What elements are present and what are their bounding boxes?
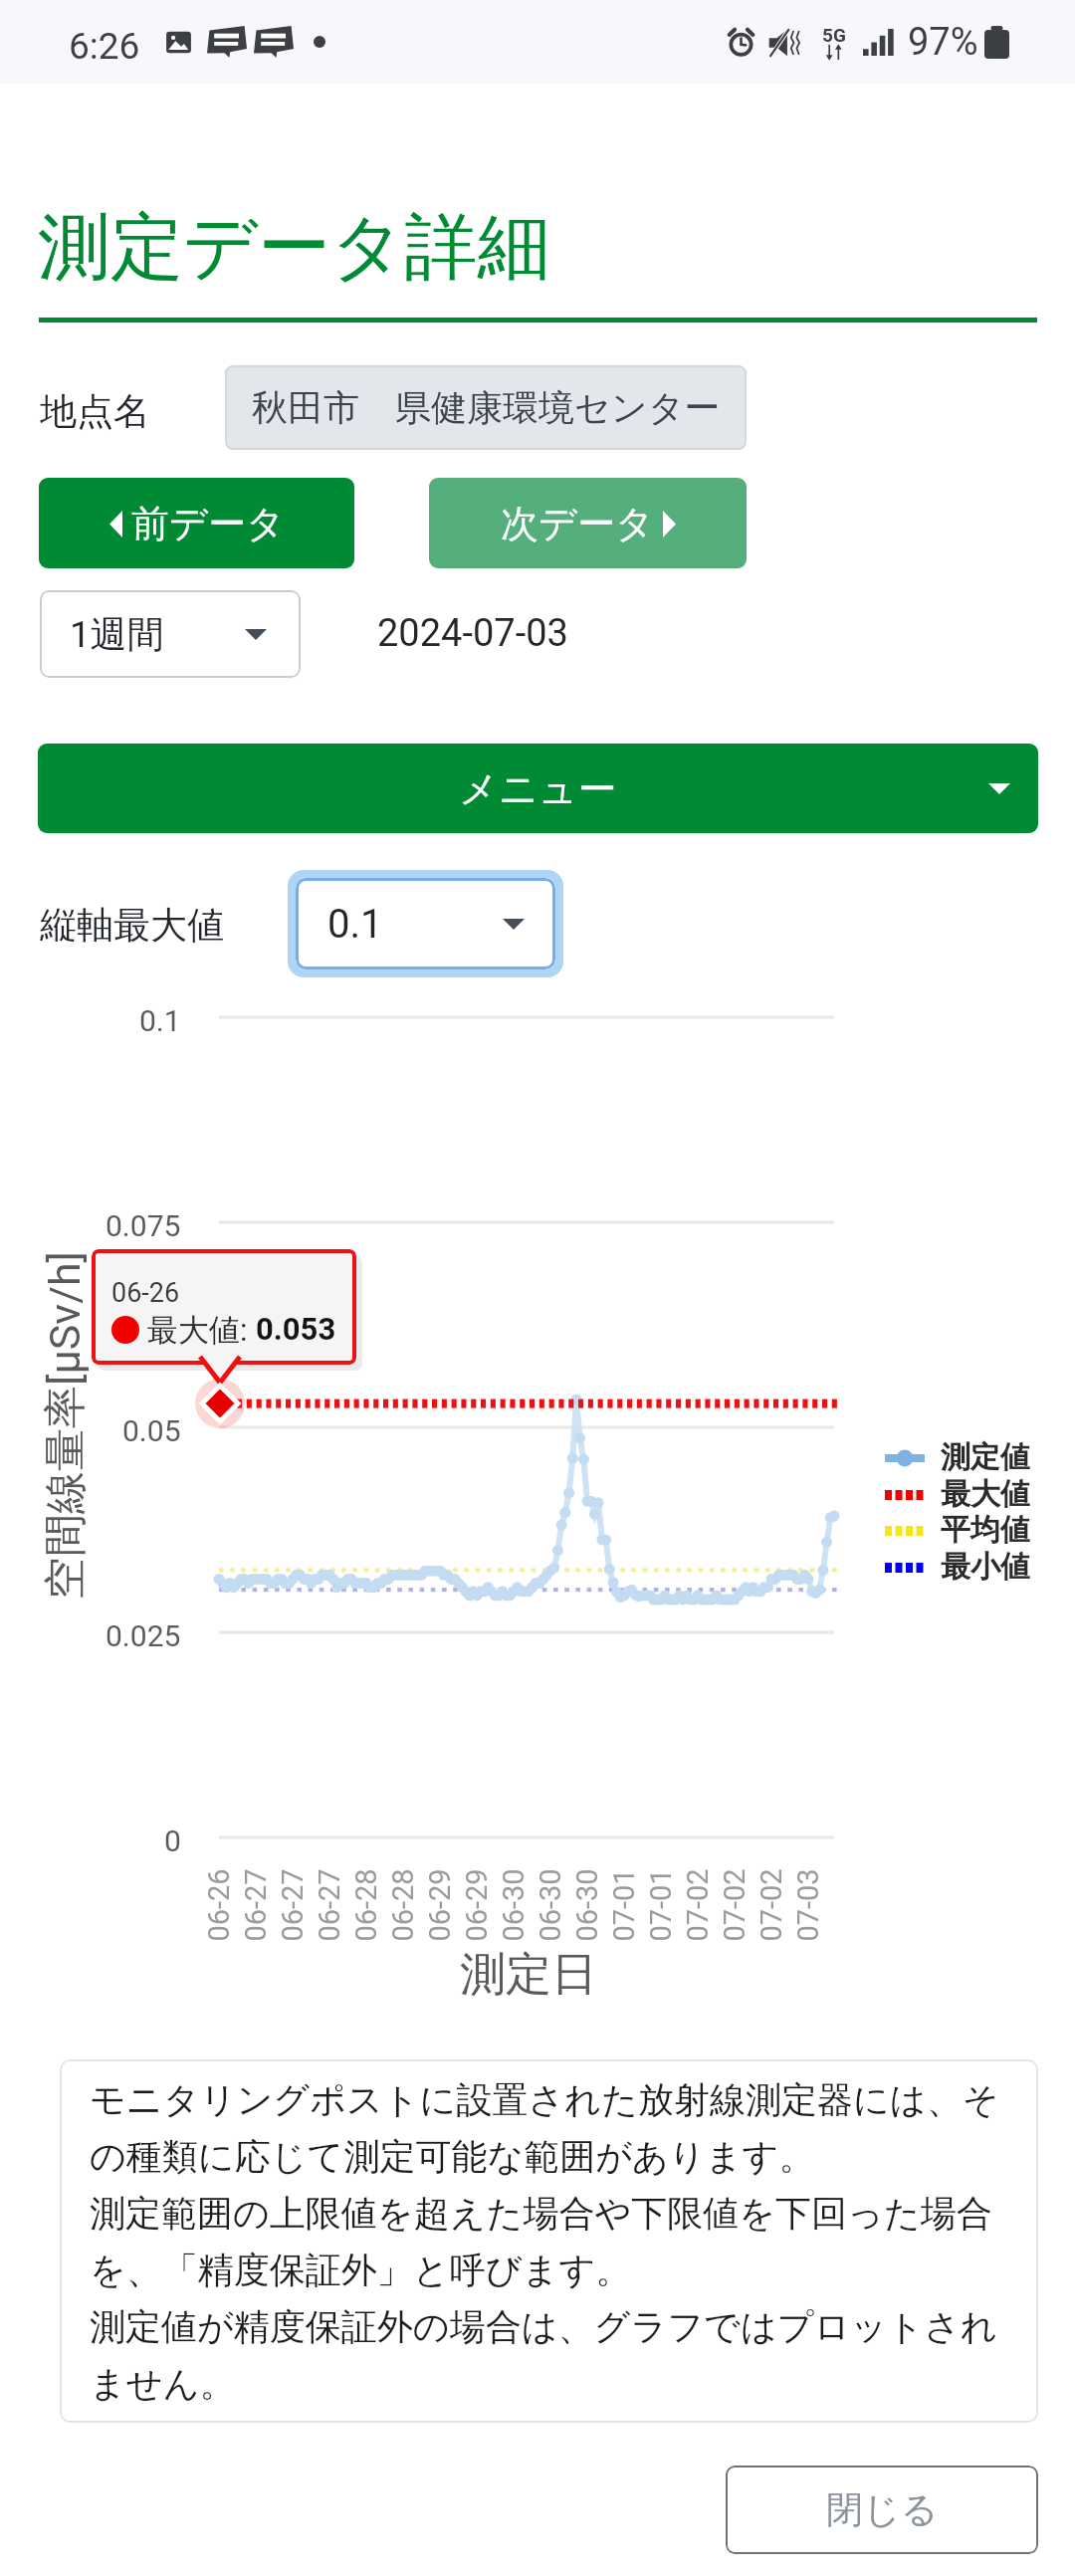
staticText: 06-30 [534, 1821, 567, 1990]
staticText: 測定値が精度保証外の場合は、グラフではプロットされ [90, 2304, 997, 2349]
button[interactable]: 前データ [39, 478, 354, 568]
staticText: を、「精度保証外」と呼びます。 [90, 2248, 632, 2292]
staticText: 07-01 [607, 1821, 641, 1990]
staticText: 0.1 [139, 1003, 181, 1038]
staticText: 06-26 [111, 1277, 180, 1309]
staticText: 測定データ詳細 [38, 202, 550, 294]
staticText: 6:26 [69, 25, 140, 68]
staticText: 0.053 [256, 1311, 336, 1347]
staticText: 06-27 [313, 1821, 346, 1990]
staticText: 07-02 [681, 1821, 715, 1990]
staticText: モニタリングポストに設置された放射線測定器には、そ [90, 2077, 999, 2122]
staticText: 縦軸最大値 [40, 902, 224, 949]
staticText: 06-28 [386, 1821, 420, 1990]
staticText: 97% [908, 20, 978, 65]
staticText: 0.075 [106, 1208, 181, 1243]
staticText: ません。 [90, 2361, 236, 2406]
staticText: 07-03 [791, 1821, 825, 1990]
staticText: 測定範囲の上限値を超えた場合や下限値を下回った場合 [90, 2191, 992, 2236]
staticText: 0.1 [327, 901, 383, 948]
staticText: 0.05 [122, 1413, 181, 1448]
staticText: 閉じる [826, 2486, 939, 2533]
staticText: メニュー [459, 764, 617, 813]
staticText: 06-27 [276, 1821, 310, 1990]
staticText: 測定値 [941, 1438, 1030, 1476]
staticText: 0 [164, 1824, 181, 1858]
staticText: 平均値 [941, 1511, 1030, 1549]
staticText: 2024-07-03 [377, 611, 568, 656]
button[interactable]: 1週間 [40, 590, 301, 678]
staticText: 06-30 [570, 1821, 604, 1990]
staticText: 06-26 [202, 1821, 236, 1990]
staticText: 06-29 [460, 1821, 494, 1990]
staticText: 最大値: [147, 1311, 256, 1350]
staticText: 5G [822, 24, 846, 46]
button[interactable]: メニュー [38, 744, 1038, 833]
staticText: 測定日 [460, 1946, 597, 2004]
staticText: 最小値 [941, 1548, 1030, 1586]
staticText: 空間線量率[μSv/h] [39, 1177, 93, 1674]
staticText: 06-27 [239, 1821, 273, 1990]
staticText: 07-02 [754, 1821, 788, 1990]
staticText: 地点名 [40, 388, 150, 435]
staticText: 秋田市 県健康環境センター [252, 385, 721, 430]
staticText: の種類に応じて測定可能な範囲があります。 [90, 2134, 815, 2179]
staticText: 1週間 [70, 611, 164, 658]
staticText: 06-29 [423, 1821, 457, 1990]
staticText: 06-28 [349, 1821, 383, 1990]
button[interactable]: 次データ [429, 478, 747, 568]
staticText: 前データ [131, 500, 285, 547]
button[interactable]: 秋田市 県健康環境センター [225, 365, 747, 450]
staticText: 06-30 [497, 1821, 531, 1990]
staticText: 07-02 [718, 1821, 752, 1990]
staticText: 最大値 [941, 1475, 1030, 1513]
staticText: 0.025 [106, 1618, 181, 1653]
staticText: 次データ [501, 500, 654, 547]
button[interactable]: 0.1 [296, 878, 555, 969]
staticText: 07-01 [644, 1821, 678, 1990]
button[interactable]: 閉じる [726, 2466, 1038, 2554]
